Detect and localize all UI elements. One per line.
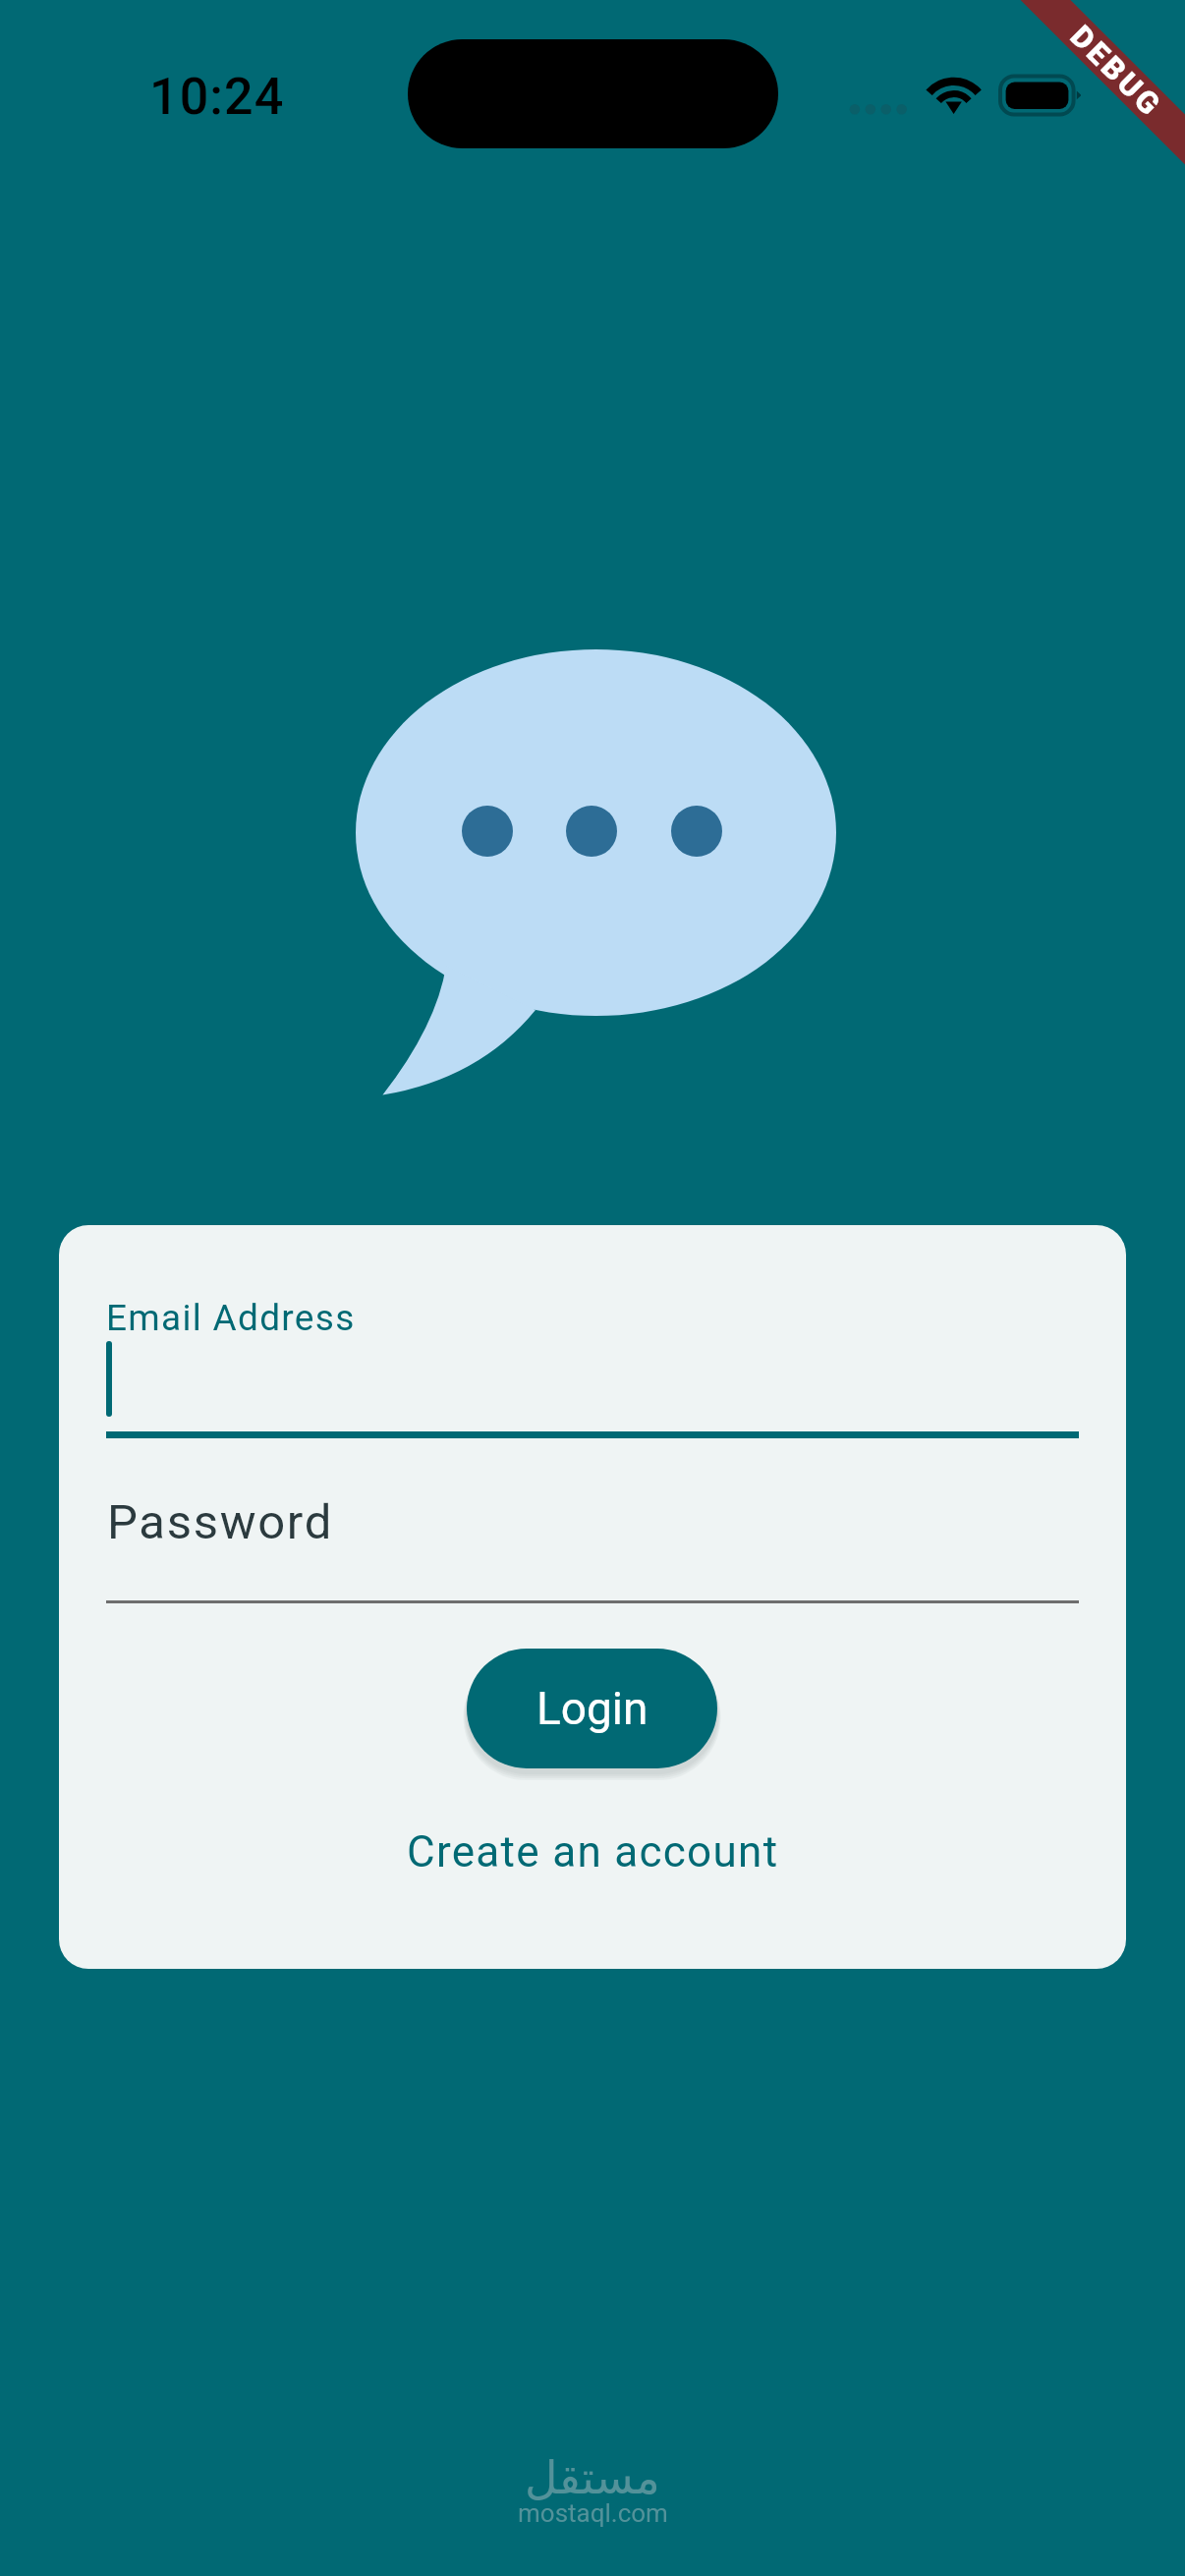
staticText: Create an account <box>407 1826 779 1877</box>
staticText: Login <box>536 1682 649 1735</box>
other: Debug banner <box>986 0 1185 201</box>
button[interactable]: Login <box>467 1649 717 1768</box>
staticText: Password <box>107 1494 334 1550</box>
button[interactable]: Create an account <box>376 1820 809 1884</box>
staticText: mostaql.com <box>518 2498 668 2528</box>
staticText: Email Address <box>106 1297 356 1339</box>
button[interactable]: Password <box>106 1471 1079 1603</box>
button[interactable]: Email Address <box>106 1284 1079 1441</box>
staticText: 10:24 <box>149 67 285 127</box>
staticText: DEBUG <box>1063 18 1170 124</box>
staticText: مستقل <box>525 2451 660 2504</box>
